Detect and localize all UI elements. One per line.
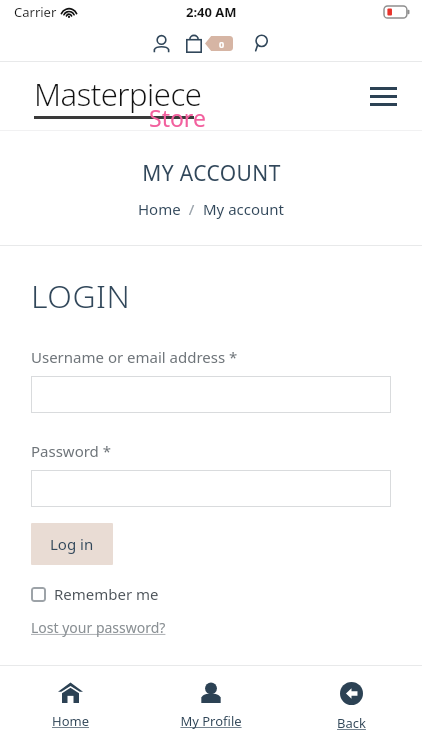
staticText: Lost your password?	[31, 618, 166, 637]
staticText: Home	[52, 712, 89, 730]
button[interactable]: Lost your password?	[31, 618, 166, 637]
staticText: Store	[149, 102, 206, 133]
staticText: Log in	[50, 534, 94, 554]
button[interactable]	[31, 470, 391, 507]
button[interactable]: Home	[138, 199, 181, 219]
button[interactable]: Home	[0, 666, 140, 730]
staticText: 2:40 AM	[186, 3, 237, 21]
button[interactable]: Log in	[31, 523, 113, 565]
staticText: My Profile	[180, 712, 242, 730]
staticText: Password *	[31, 441, 112, 461]
staticText: LOGIN	[31, 274, 131, 318]
staticText: My account	[203, 199, 285, 219]
staticText: Remember me	[54, 584, 159, 604]
button[interactable]: My Profile	[140, 666, 281, 730]
button[interactable]: Remember me	[31, 584, 159, 604]
button[interactable]	[31, 376, 391, 413]
staticText: Carrier	[14, 3, 57, 21]
button[interactable]: Account	[144, 26, 178, 60]
staticText: MY ACCOUNT	[142, 159, 281, 188]
staticText: /	[181, 199, 203, 219]
button[interactable]: Cart, 0 items	[184, 30, 235, 57]
button[interactable]: Search	[245, 26, 279, 60]
staticText: 0	[219, 38, 225, 50]
staticText: Username or email address *	[31, 347, 238, 367]
button[interactable]: Menu	[366, 79, 400, 113]
staticText: Back	[337, 714, 366, 732]
staticText: Masterpiece	[34, 73, 202, 115]
staticText: Home	[138, 199, 181, 219]
button[interactable]: Back	[281, 666, 422, 732]
